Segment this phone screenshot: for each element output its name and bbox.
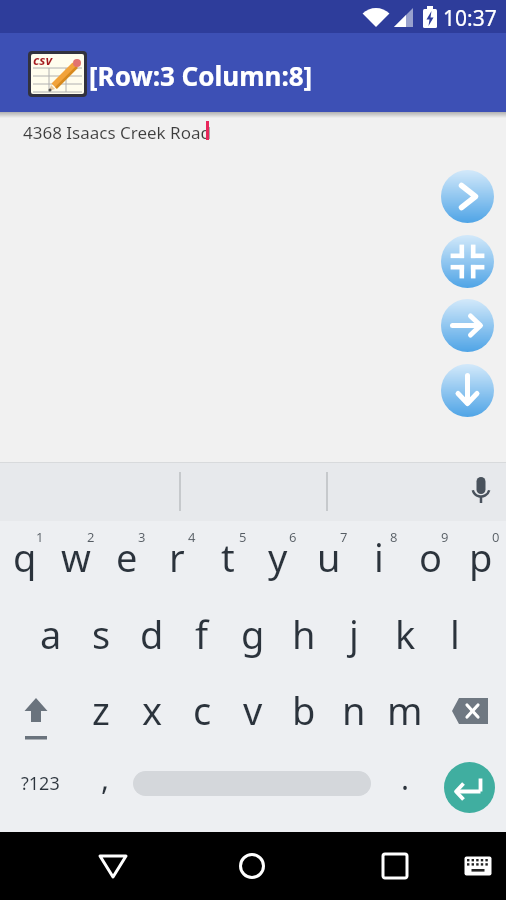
staticText: a	[40, 608, 62, 660]
button[interactable]	[441, 170, 494, 223]
button[interactable]: t	[203, 527, 253, 587]
staticText: m	[387, 684, 423, 736]
button[interactable]: a	[26, 604, 76, 664]
staticText: p	[469, 531, 493, 583]
staticText: csv	[33, 51, 53, 69]
button[interactable]	[441, 235, 494, 288]
button[interactable]: w	[51, 527, 101, 587]
staticText: 0	[492, 528, 500, 546]
staticText: e	[116, 531, 138, 583]
button[interactable]	[441, 364, 494, 417]
button[interactable]	[365, 836, 425, 896]
button[interactable]: .	[380, 748, 430, 808]
staticText: z	[92, 684, 110, 736]
button[interactable]: m	[380, 680, 430, 740]
button[interactable]	[452, 836, 504, 896]
staticText: 4	[188, 528, 196, 546]
staticText: 3	[138, 528, 146, 546]
button[interactable]: l	[430, 604, 480, 664]
staticText: 5	[239, 528, 247, 546]
staticText: .	[401, 758, 410, 799]
button[interactable]: s	[76, 604, 126, 664]
button[interactable]	[11, 685, 61, 741]
staticText: 9	[441, 528, 449, 546]
button[interactable]: d	[127, 604, 177, 664]
staticText: s	[92, 608, 111, 660]
staticText: q	[13, 531, 37, 583]
staticText: t	[221, 531, 235, 583]
staticText: 10:37	[443, 4, 497, 33]
button[interactable]: j	[329, 604, 379, 664]
staticText: h	[292, 608, 316, 660]
button[interactable]	[444, 762, 495, 813]
button[interactable]	[441, 299, 494, 352]
staticText: ,	[101, 758, 110, 799]
staticText: 1	[36, 528, 44, 546]
button[interactable]: ?123	[14, 763, 66, 803]
staticText: o	[419, 531, 442, 583]
button[interactable]	[445, 690, 497, 734]
button[interactable]: p	[456, 527, 506, 587]
button[interactable]	[133, 771, 371, 796]
button[interactable]: k	[380, 604, 430, 664]
button[interactable]: q	[0, 527, 50, 587]
staticText: u	[317, 531, 341, 583]
button[interactable]: z	[76, 680, 126, 740]
button[interactable]: e	[102, 527, 152, 587]
staticText: x	[142, 684, 163, 736]
staticText: g	[241, 608, 265, 660]
staticText: d	[140, 608, 164, 660]
button[interactable]: ,	[80, 748, 130, 808]
button[interactable]: o	[405, 527, 455, 587]
staticText: f	[195, 608, 209, 660]
staticText: ?123	[21, 771, 60, 796]
staticText: w	[61, 531, 91, 583]
button[interactable]: x	[127, 680, 177, 740]
button[interactable]: g	[228, 604, 278, 664]
button[interactable]: r	[152, 527, 202, 587]
staticText: j	[349, 608, 359, 660]
staticText: [Row:3 Column:8]	[89, 58, 313, 93]
button[interactable]: n	[329, 680, 379, 740]
button[interactable]: i	[354, 527, 404, 587]
staticText: 7	[340, 528, 348, 546]
button[interactable]: u	[304, 527, 354, 587]
staticText: k	[395, 608, 416, 660]
button[interactable]: b	[279, 680, 329, 740]
button[interactable]: y	[253, 527, 303, 587]
staticText: 8	[390, 528, 398, 546]
button[interactable]: v	[228, 680, 278, 740]
staticText: i	[374, 531, 384, 583]
button[interactable]	[222, 836, 282, 896]
staticText: b	[292, 684, 316, 736]
staticText: 6	[289, 528, 297, 546]
button[interactable]: h	[279, 604, 329, 664]
staticText: y	[268, 531, 288, 583]
button[interactable]	[83, 836, 143, 896]
staticText: c	[193, 684, 212, 736]
staticText: v	[243, 684, 263, 736]
button[interactable]: c	[177, 680, 227, 740]
staticText: r	[169, 531, 185, 583]
staticText: 2	[87, 528, 95, 546]
staticText: l	[450, 608, 460, 660]
button[interactable]: f	[177, 604, 227, 664]
staticText: n	[342, 684, 366, 736]
staticText: 4368 Isaacs Creek Road	[23, 121, 211, 144]
